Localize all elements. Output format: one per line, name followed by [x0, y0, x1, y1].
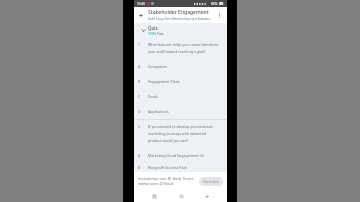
- staticText: A: [138, 153, 141, 158]
- button[interactable]: B: [134, 163, 227, 172]
- staticText: Engagement Plans: [148, 79, 180, 84]
- staticText: 100% Pass: [148, 32, 164, 36]
- button[interactable]: A: [134, 59, 227, 74]
- staticText: Build Long-Term Relationships and Adapti…: [148, 17, 213, 21]
- staticText: Applications: [148, 109, 169, 114]
- button[interactable]: B: [134, 74, 227, 89]
- staticText: What features helps you create Salesforc…: [148, 42, 222, 47]
- button[interactable]: A: [134, 148, 227, 163]
- staticText: 1: [138, 42, 141, 47]
- staticText: D: [138, 109, 141, 114]
- staticText: marketing journeys with advanced segment…: [148, 131, 222, 136]
- staticText: Nonprofit Success Pack: [148, 165, 188, 170]
- staticText: your stuff toward reaching a goal?: [148, 49, 206, 54]
- staticText: Good attempt, score 80. Nicely. There is…: [138, 177, 196, 181]
- button[interactable]: C: [134, 89, 227, 104]
- staticText: 2: [138, 124, 141, 129]
- staticText: C: [138, 94, 141, 99]
- staticText: Check Quiz: [203, 180, 219, 184]
- button[interactable]: Back: [201, 190, 213, 202]
- staticText: Stakeholder Engagement with Schol…: [148, 9, 213, 16]
- button[interactable]: 1: [134, 38, 227, 59]
- staticText: Quiz: [148, 25, 158, 31]
- staticText: B: [138, 165, 141, 170]
- staticText: If you wanted to develop personalized au…: [148, 124, 222, 129]
- staticText: attempt across 20 Result.: [138, 182, 174, 186]
- button[interactable]: Quiz: [134, 23, 227, 38]
- staticText: B: [138, 79, 141, 84]
- button[interactable]: 2: [134, 120, 227, 148]
- staticText: A: [138, 64, 141, 69]
- staticText: Goals: [148, 94, 158, 99]
- button[interactable]: Check Quiz: [199, 177, 223, 186]
- button[interactable]: Home: [175, 190, 187, 202]
- button[interactable]: D: [134, 104, 227, 119]
- staticText: 84%: [211, 2, 218, 6]
- staticText: 10:45: [137, 2, 146, 6]
- staticText: product would you use?: [148, 138, 189, 143]
- button[interactable]: Recents: [148, 190, 160, 202]
- button[interactable]: More options: [215, 11, 224, 20]
- staticText: Companies: [148, 64, 167, 69]
- staticText: Marketing Cloud Engagement for Industrie…: [148, 153, 222, 158]
- button[interactable]: Back: [137, 11, 146, 20]
